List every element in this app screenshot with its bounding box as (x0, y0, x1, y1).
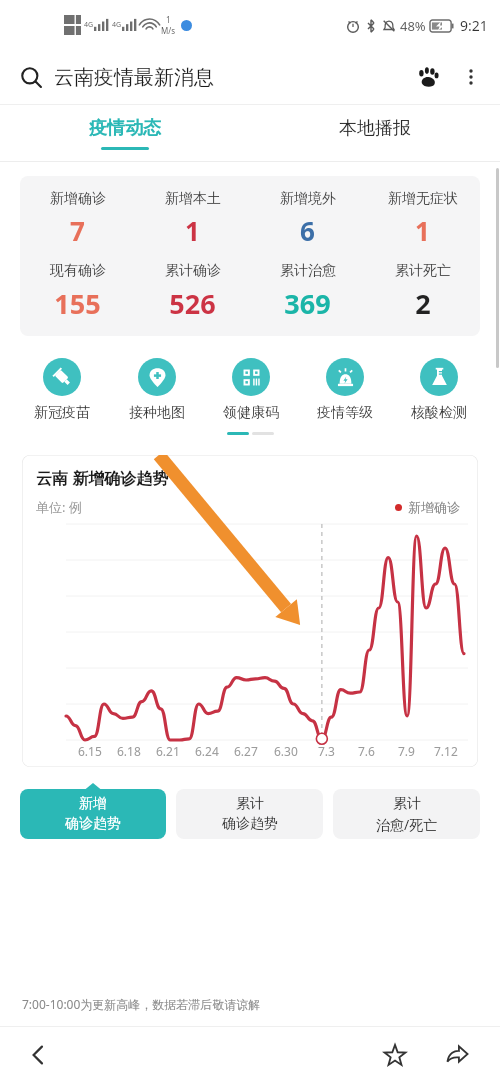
staticText: 新冠疫苗 (34, 404, 90, 422)
staticText: 6.21 (156, 743, 180, 759)
staticText: 累计 (393, 795, 421, 813)
button[interactable]: 新增本土 (135, 190, 250, 248)
button[interactable]: 领健康码 (204, 358, 298, 422)
button[interactable]: 累计死亡 (365, 262, 480, 322)
staticText: 治愈/死亡 (376, 815, 438, 834)
button[interactable]: 本地播报 (250, 105, 500, 161)
staticText: 7.6 (358, 743, 375, 759)
staticText: 4G (84, 20, 94, 30)
staticText: 新增无症状 (388, 190, 458, 208)
staticText: 6 (300, 213, 315, 248)
staticText: 累计治愈 (280, 262, 336, 280)
staticText: 155 (54, 285, 101, 322)
staticText: 现有确诊 (50, 262, 106, 280)
button[interactable]: 新冠疫苗 (14, 358, 109, 422)
staticText: 新增境外 (280, 190, 336, 208)
staticText: 累计确诊 (165, 262, 221, 280)
button[interactable]: 新增境外 (250, 190, 365, 248)
staticText: 核酸检测 (411, 404, 467, 422)
staticText: 2 (415, 285, 431, 322)
staticText: 7:00-10:00为更新高峰，数据若滞后敬请谅解 (22, 996, 261, 1012)
button[interactable]: 核酸检测 (392, 358, 486, 422)
button[interactable]: 新增无症状 (365, 190, 480, 248)
staticText: 526 (169, 285, 216, 322)
button[interactable]: 新增确诊 (20, 190, 135, 248)
staticText: 领健康码 (223, 404, 279, 422)
staticText: 1 (185, 213, 200, 248)
staticText: 本地播报 (339, 117, 411, 140)
staticText: 新增 (79, 795, 107, 813)
button[interactable]: 累计治愈 (250, 262, 365, 322)
staticText: 48% (400, 17, 426, 35)
staticText: 7.12 (434, 743, 458, 759)
button[interactable]: Baidu (410, 59, 446, 95)
staticText: 累计死亡 (395, 262, 451, 280)
button[interactable]: 疫情等级 (298, 358, 392, 422)
staticText: 1 (166, 14, 171, 25)
button[interactable]: 现有确诊 (20, 262, 135, 322)
staticText: 6.15 (78, 743, 102, 759)
staticText: 确诊趋势 (65, 815, 121, 833)
button[interactable]: Favorite (374, 1034, 416, 1076)
staticText: 确诊趋势 (222, 815, 278, 833)
button[interactable]: Back (18, 1035, 58, 1075)
staticText: 6.30 (274, 743, 298, 759)
button[interactable]: 云南疫情最新消息 (54, 65, 410, 90)
staticText: 7.9 (398, 743, 415, 759)
button[interactable]: 累计 (333, 789, 480, 839)
button[interactable]: 接种地图 (109, 358, 204, 422)
button[interactable]: 疫情动态 (0, 105, 250, 161)
staticText: 1 (415, 213, 430, 248)
staticText: M/s (161, 25, 176, 36)
staticText: 接种地图 (129, 404, 185, 422)
staticText: 新增确诊 (408, 499, 460, 515)
button[interactable]: 累计 (176, 789, 323, 839)
staticText: 新增确诊 (50, 190, 106, 208)
staticText: 6.18 (117, 743, 141, 759)
button[interactable]: 累计确诊 (135, 262, 250, 322)
button[interactable]: Search (14, 60, 48, 94)
button[interactable]: More options (456, 62, 486, 92)
staticText: 云南 新增确诊趋势 (36, 467, 169, 489)
staticText: 疫情等级 (317, 404, 373, 422)
staticText: 6.27 (234, 743, 258, 759)
button[interactable]: 新增 (20, 789, 166, 839)
staticText: 6.24 (195, 743, 219, 759)
staticText: 4G (112, 20, 122, 30)
staticText: 单位: 例 (36, 498, 82, 516)
staticText: 7 (70, 213, 85, 248)
button[interactable]: Share (436, 1034, 478, 1076)
staticText: 369 (284, 285, 331, 322)
staticText: 疫情动态 (89, 117, 161, 140)
staticText: 新增本土 (165, 190, 221, 208)
staticText: 累计 (236, 795, 264, 813)
staticText: 9:21 (460, 16, 488, 35)
staticText: 7.3 (318, 743, 335, 759)
